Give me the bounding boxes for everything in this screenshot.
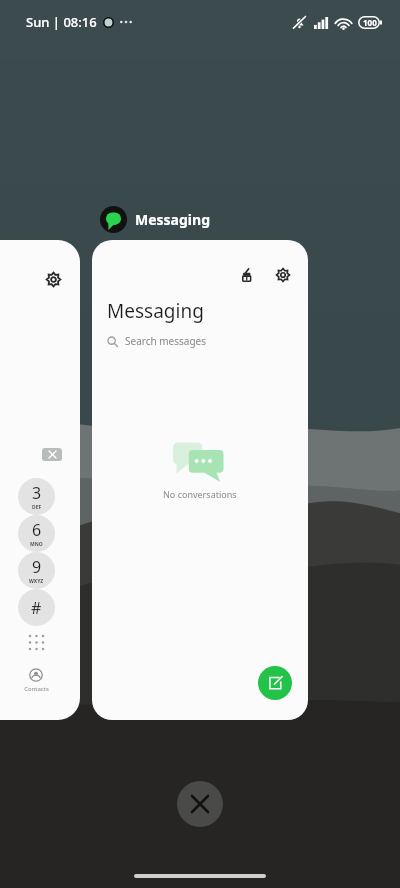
button[interactable]: Search messages bbox=[107, 330, 267, 352]
staticText: 9 bbox=[32, 556, 42, 578]
button[interactable]: Settings bbox=[270, 262, 296, 288]
button[interactable]: Messaging bbox=[100, 206, 210, 233]
staticText: No conversations bbox=[163, 488, 237, 500]
staticText: 6 bbox=[32, 519, 42, 541]
button[interactable]: Compose new message bbox=[258, 666, 292, 700]
button[interactable]: Clean up bbox=[234, 262, 260, 288]
button[interactable]: 6 bbox=[18, 515, 55, 552]
button[interactable]: 9 bbox=[18, 552, 55, 589]
button[interactable]: 3 bbox=[18, 478, 55, 515]
staticText: 3 bbox=[32, 482, 42, 504]
button[interactable]: Clean up bbox=[92, 240, 308, 720]
button[interactable]: Keypad bbox=[24, 630, 48, 654]
button[interactable]: Settings bbox=[0, 240, 80, 720]
button[interactable]: Close all bbox=[177, 781, 223, 827]
staticText: Search messages bbox=[125, 334, 207, 348]
button[interactable]: Backspace bbox=[42, 448, 62, 461]
button[interactable]: # bbox=[18, 589, 55, 626]
staticText: MNO bbox=[30, 541, 43, 548]
staticText: Messaging bbox=[135, 210, 210, 229]
staticText: WXYZ bbox=[29, 578, 44, 585]
button[interactable]: Contacts bbox=[16, 668, 56, 693]
staticText: # bbox=[31, 597, 42, 619]
staticText: DEF bbox=[32, 504, 42, 511]
staticText: Sun | 08:16 bbox=[26, 13, 97, 31]
staticText: 100 bbox=[363, 17, 377, 28]
staticText: Messaging bbox=[107, 298, 204, 324]
staticText: Contacts bbox=[24, 685, 49, 693]
button[interactable]: Settings bbox=[40, 266, 66, 292]
